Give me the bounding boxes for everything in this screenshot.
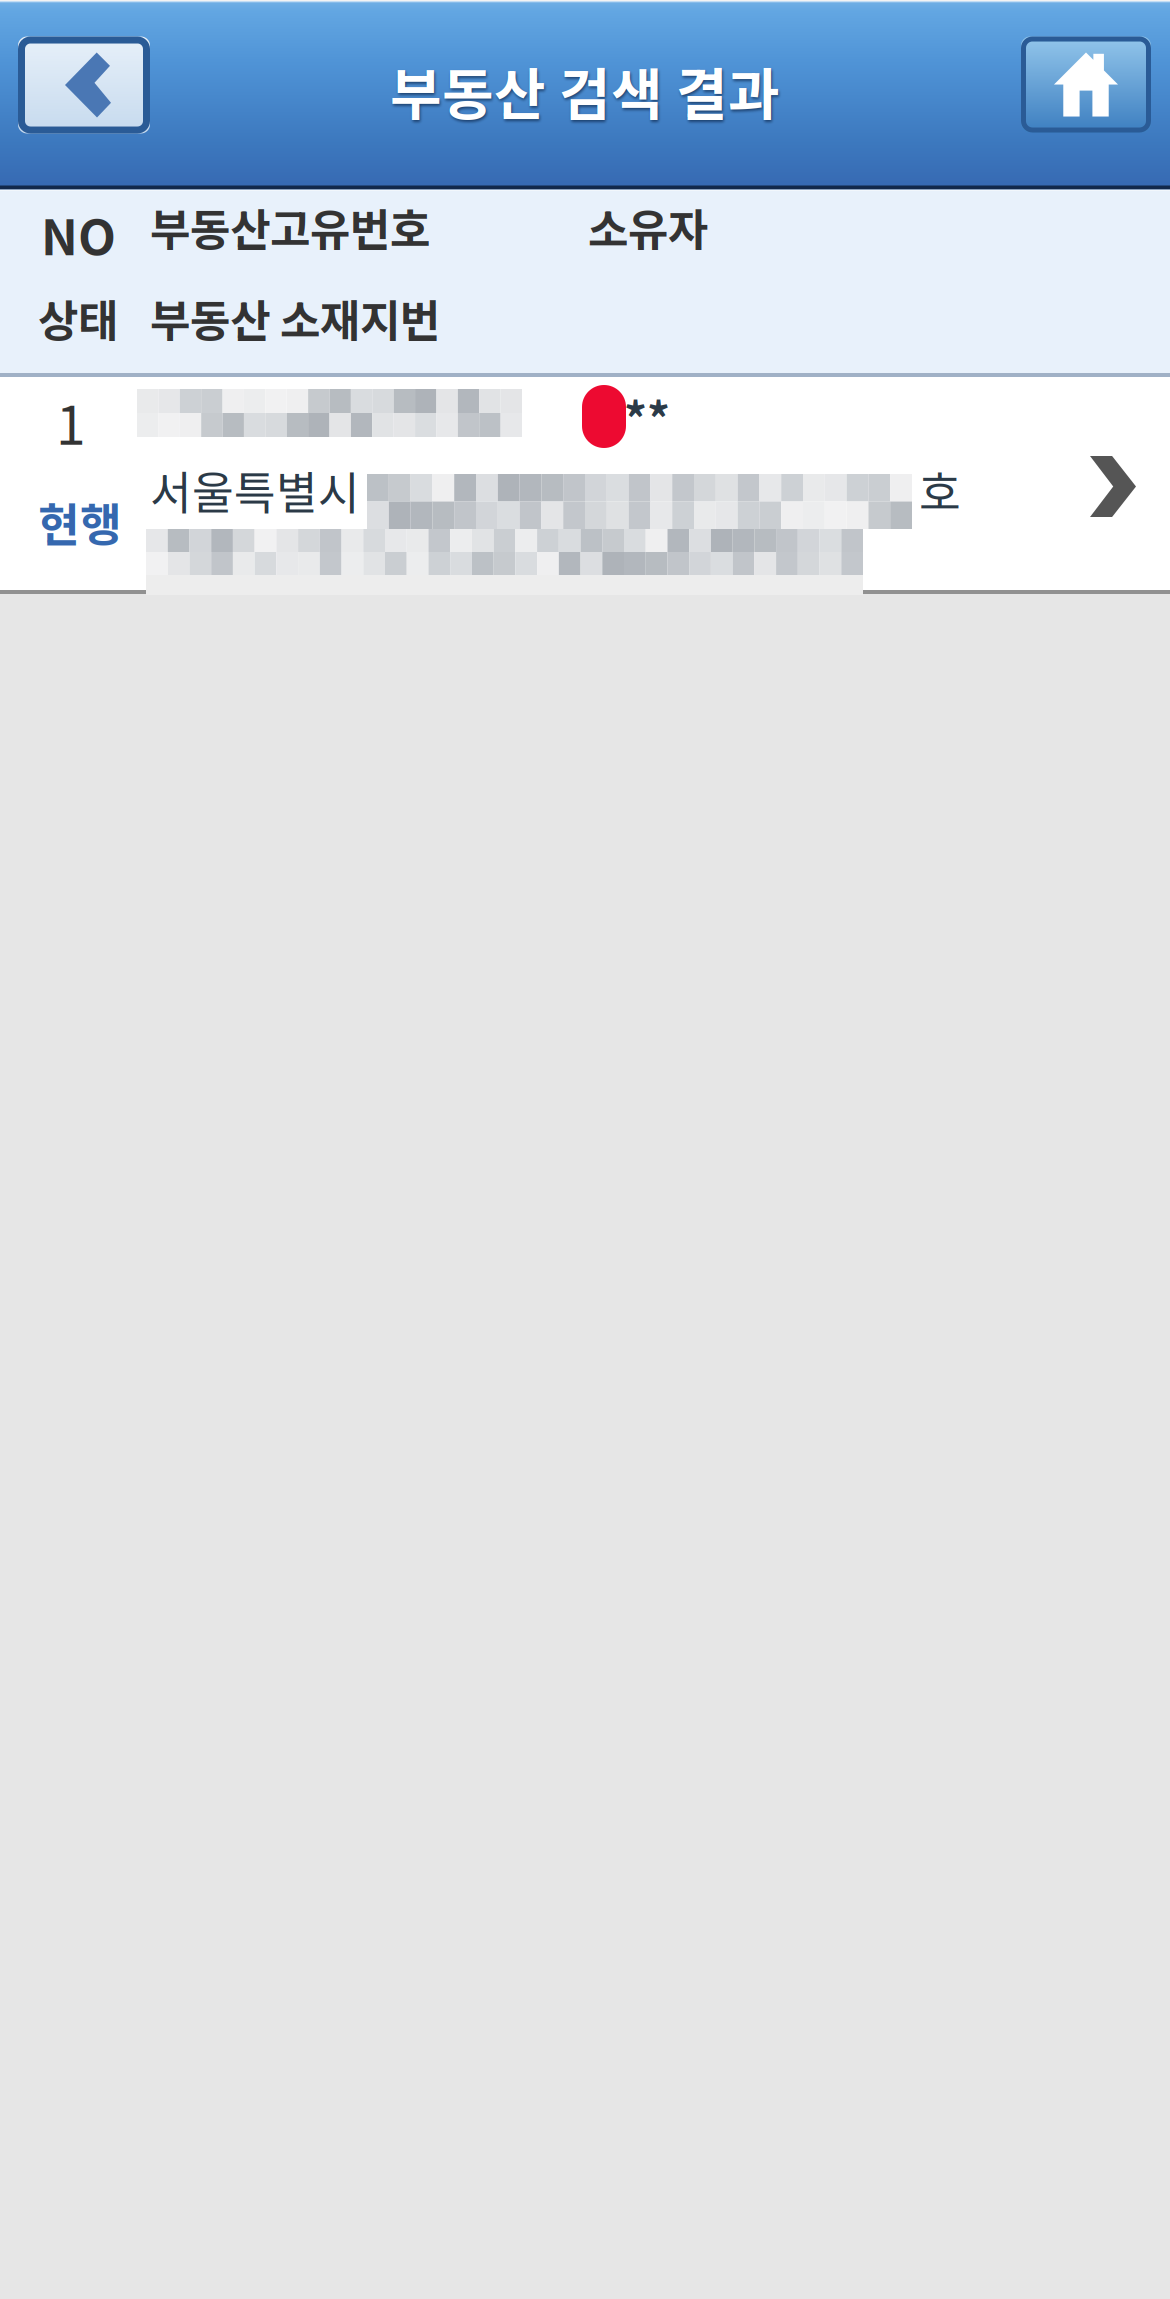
staticText: 소유자	[588, 195, 708, 259]
staticText: 서울특별시	[150, 457, 360, 523]
staticText: 상태	[38, 286, 118, 350]
staticText: **	[624, 383, 670, 449]
button[interactable]: 1	[0, 377, 1170, 595]
staticText: 현행	[38, 489, 122, 555]
staticText: 부동산 소재지번	[150, 286, 440, 350]
staticText: 호	[919, 457, 961, 523]
staticText: NO	[41, 198, 116, 269]
staticText: 부동산고유번호	[150, 195, 430, 259]
staticText: 1	[56, 383, 86, 460]
button[interactable]: Home	[1021, 36, 1151, 132]
staticText: 부동산 검색 결과	[390, 50, 780, 131]
button[interactable]: Back	[18, 36, 150, 133]
